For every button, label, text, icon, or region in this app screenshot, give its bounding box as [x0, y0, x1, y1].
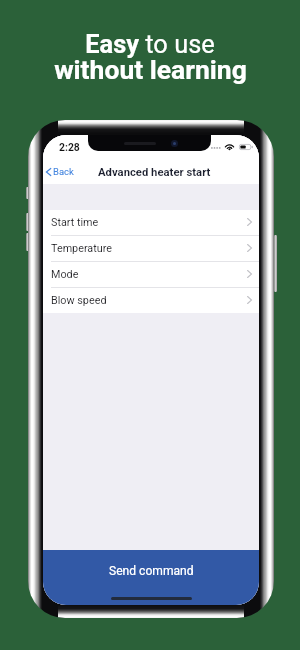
staticText: without learning	[54, 54, 247, 85]
button[interactable]: Start time	[43, 210, 259, 235]
staticText: Temperature	[51, 242, 112, 255]
staticText: Send command	[109, 564, 194, 578]
staticText: 2:28	[59, 141, 80, 153]
staticText: Start time	[51, 216, 99, 229]
button[interactable]: Back	[43, 162, 80, 181]
staticText: Back	[53, 166, 74, 177]
staticText: Mode	[51, 268, 79, 281]
staticText: Blow speed	[51, 294, 107, 307]
staticText: Advanced heater start	[98, 166, 211, 179]
staticText: Easy to use	[85, 29, 215, 59]
button[interactable]: Blow speed	[43, 288, 259, 313]
button[interactable]: Mode	[43, 262, 259, 287]
button[interactable]: Send command	[43, 550, 259, 605]
button[interactable]: Temperature	[43, 236, 259, 261]
